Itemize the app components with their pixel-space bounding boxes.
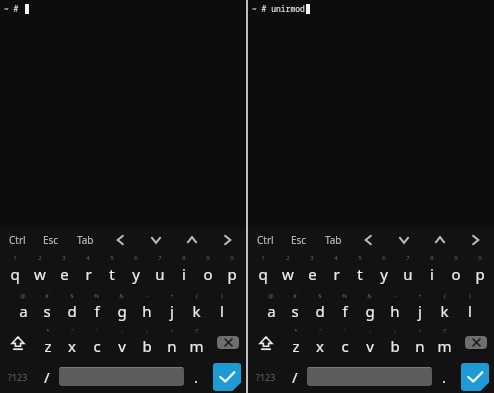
button[interactable]: 1 [2, 252, 27, 290]
button[interactable]: % [84, 290, 109, 325]
button[interactable]: # [35, 290, 59, 325]
button[interactable]: 1 [250, 252, 275, 290]
button[interactable]: . [432, 360, 456, 393]
button[interactable]: Tab [68, 228, 102, 252]
button[interactable]: 9 [444, 252, 468, 290]
button[interactable]: Right [458, 228, 494, 252]
staticText: l [468, 301, 472, 321]
button[interactable]: 0 [220, 252, 244, 290]
button[interactable]: 6 [124, 252, 148, 290]
button[interactable]: Ctrl [248, 228, 282, 252]
button[interactable]: 4 [76, 252, 100, 290]
staticText: $ [318, 292, 322, 300]
button[interactable]: : [109, 325, 134, 360]
button[interactable]: 7 [148, 252, 172, 290]
button[interactable]: * [284, 325, 308, 360]
button[interactable]: ; [134, 325, 159, 360]
button[interactable]: ) [209, 290, 234, 325]
button[interactable]: ( [184, 290, 209, 325]
button[interactable]: 8 [420, 252, 444, 290]
button[interactable]: % [332, 290, 357, 325]
button[interactable]: Ctrl [0, 228, 34, 252]
staticText: ? [195, 327, 198, 335]
button[interactable]: 9 [196, 252, 220, 290]
button[interactable]: ' [84, 325, 109, 360]
button[interactable]: ~ # unirmod [248, 0, 494, 228]
button[interactable]: Enter [208, 360, 246, 393]
button[interactable]: 0 [468, 252, 492, 290]
staticText: ?123 [256, 371, 276, 383]
button[interactable]: & [357, 290, 382, 325]
button[interactable]: Shift [0, 325, 36, 360]
button[interactable]: Right [210, 228, 246, 252]
button[interactable]: Down [138, 228, 174, 252]
button[interactable]: 4 [324, 252, 348, 290]
staticText: e [308, 264, 317, 284]
button[interactable]: $ [59, 290, 84, 325]
button[interactable]: Shift [248, 325, 284, 360]
button[interactable]: * [36, 325, 60, 360]
button[interactable]: ~ # [0, 0, 246, 228]
button[interactable]: Up [174, 228, 210, 252]
staticText: - [394, 292, 396, 300]
button[interactable]: # [283, 290, 307, 325]
button[interactable]: - [134, 290, 159, 325]
staticText: * [46, 327, 50, 335]
button[interactable]: Space [59, 367, 184, 386]
button[interactable]: 8 [172, 252, 196, 290]
button[interactable]: ! [159, 325, 184, 360]
staticText: # [293, 292, 297, 300]
staticText: 2 [286, 254, 290, 262]
button[interactable]: + [407, 290, 432, 325]
button[interactable]: ) [457, 290, 482, 325]
staticText: u [155, 264, 165, 284]
staticText: r [85, 264, 92, 284]
button[interactable]: ! [407, 325, 432, 360]
staticText: g [365, 301, 375, 321]
button[interactable]: 5 [100, 252, 124, 290]
button[interactable]: Left [102, 228, 138, 252]
button[interactable]: ( [432, 290, 457, 325]
button[interactable]: ' [332, 325, 357, 360]
button[interactable]: Space [307, 367, 432, 386]
button[interactable]: Backspace [457, 325, 494, 360]
button[interactable]: 5 [348, 252, 372, 290]
button[interactable]: Enter [456, 360, 494, 393]
button[interactable]: : [357, 325, 382, 360]
button[interactable]: 3 [52, 252, 76, 290]
button[interactable]: 2 [275, 252, 300, 290]
button[interactable]: " [60, 325, 84, 360]
staticText: h [142, 301, 152, 321]
button[interactable]: @ [259, 290, 283, 325]
button[interactable]: ; [382, 325, 407, 360]
button[interactable]: @ [11, 290, 35, 325]
button[interactable]: Esc [34, 228, 68, 252]
button[interactable]: + [159, 290, 184, 325]
button[interactable]: Left [350, 228, 386, 252]
button[interactable]: ?123 [0, 360, 35, 393]
button[interactable]: & [109, 290, 134, 325]
button[interactable]: $ [307, 290, 332, 325]
button[interactable]: ? [432, 325, 457, 360]
staticText: . [442, 367, 447, 387]
button[interactable]: . [184, 360, 208, 393]
button[interactable]: 2 [27, 252, 52, 290]
button[interactable]: 3 [300, 252, 324, 290]
button[interactable]: ? [184, 325, 209, 360]
button[interactable]: ?123 [248, 360, 283, 393]
button[interactable]: / [35, 360, 59, 393]
button[interactable]: Up [422, 228, 458, 252]
button[interactable]: 7 [396, 252, 420, 290]
staticText: n [415, 336, 425, 356]
button[interactable]: Down [386, 228, 422, 252]
button[interactable]: / [283, 360, 307, 393]
button[interactable]: 6 [372, 252, 396, 290]
button[interactable]: Tab [316, 228, 350, 252]
staticText: " [319, 327, 322, 335]
button[interactable]: Esc [282, 228, 316, 252]
button[interactable]: " [308, 325, 332, 360]
staticText: t [109, 264, 115, 284]
button[interactable]: - [382, 290, 407, 325]
button[interactable]: Backspace [209, 325, 246, 360]
staticText: 0 [478, 254, 482, 262]
